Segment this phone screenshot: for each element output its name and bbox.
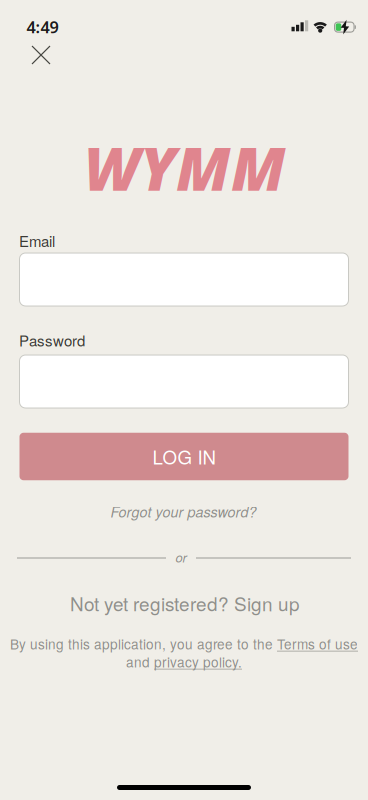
staticText: By using this application, you agree to …: [10, 634, 277, 653]
staticText: Forgot your password?: [110, 501, 256, 522]
button[interactable]: privacy policy.: [154, 652, 242, 671]
staticText: Not yet registered? Sign up: [70, 589, 300, 616]
button[interactable]: Forgot your password?: [110, 501, 256, 522]
button[interactable]: Terms of use: [277, 634, 358, 653]
staticText: WYMM: [84, 127, 286, 208]
staticText: and: [126, 652, 154, 671]
button[interactable]: Close: [26, 40, 56, 70]
staticText: or: [175, 548, 186, 566]
staticText: Password: [19, 329, 85, 351]
button[interactable]: LOG IN: [19, 433, 348, 480]
staticText: Email: [19, 230, 55, 251]
button[interactable]: Not yet registered? Sign up: [70, 589, 300, 616]
staticText: privacy policy.: [154, 652, 242, 671]
staticText: Terms of use: [277, 634, 358, 653]
staticText: 4:49: [26, 16, 58, 38]
staticText: LOG IN: [152, 443, 215, 470]
